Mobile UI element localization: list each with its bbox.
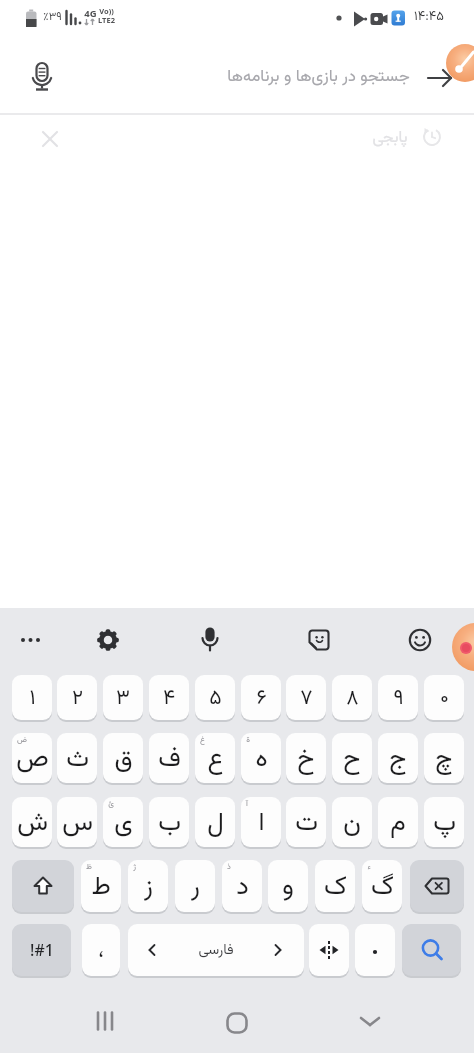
- staticText: ۲: [72, 682, 83, 715]
- staticText: س: [62, 803, 93, 844]
- staticText: ۵: [209, 682, 222, 715]
- button[interactable]: ص: [12, 733, 52, 783]
- staticText: ۴: [163, 682, 175, 715]
- button[interactable]: ت: [286, 797, 326, 847]
- staticText: ۰: [440, 682, 449, 715]
- button[interactable]: [427, 68, 453, 88]
- staticText: ئ: [108, 798, 114, 811]
- staticText: ق: [114, 739, 133, 780]
- button[interactable]: ،: [82, 924, 120, 976]
- button[interactable]: ز: [128, 860, 168, 912]
- button[interactable]: ق: [103, 733, 143, 783]
- button[interactable]: و: [268, 860, 308, 912]
- button[interactable]: [0, 33, 474, 113]
- button[interactable]: ل: [195, 797, 235, 847]
- staticText: ۹: [393, 682, 404, 715]
- staticText: ع: [207, 739, 224, 780]
- button[interactable]: ط: [81, 860, 121, 912]
- button[interactable]: ف: [149, 733, 189, 783]
- button[interactable]: [452, 623, 474, 671]
- button[interactable]: خ: [286, 733, 326, 783]
- button[interactable]: [41, 130, 59, 148]
- staticText: ی: [114, 803, 133, 844]
- button[interactable]: [309, 924, 349, 976]
- button[interactable]: ح: [332, 733, 372, 783]
- button[interactable]: [307, 628, 331, 652]
- button[interactable]: ش: [12, 797, 52, 847]
- staticText: ة: [246, 734, 250, 747]
- button[interactable]: [226, 1012, 248, 1034]
- staticText: ح: [343, 739, 361, 780]
- button[interactable]: [198, 627, 222, 653]
- staticText: غ: [200, 734, 205, 747]
- button[interactable]: ا: [241, 797, 281, 847]
- staticText: ۱۴:۴۵: [414, 7, 444, 27]
- button[interactable]: [90, 1010, 120, 1032]
- button[interactable]: ۷: [286, 675, 326, 720]
- button[interactable]: ۶: [241, 675, 281, 720]
- staticText: ه: [255, 739, 268, 780]
- button[interactable]: ه: [241, 733, 281, 783]
- button[interactable]: ‎!#1: [12, 924, 71, 976]
- button[interactable]: [408, 628, 432, 652]
- button[interactable]: ب: [149, 797, 189, 847]
- staticText: ۱: [29, 682, 36, 715]
- button[interactable]: ع: [195, 733, 235, 783]
- button[interactable]: ن: [332, 797, 372, 847]
- staticText: ۳: [116, 682, 130, 715]
- button[interactable]: ر: [175, 860, 215, 912]
- button[interactable]: [410, 860, 464, 912]
- staticText: ر: [191, 867, 200, 908]
- button[interactable]: ۲: [57, 675, 97, 720]
- button[interactable]: [358, 1012, 382, 1030]
- staticText: ج: [389, 739, 407, 780]
- button[interactable]: م: [378, 797, 418, 847]
- staticText: ک: [324, 867, 347, 908]
- button[interactable]: [446, 44, 474, 82]
- button[interactable]: ۳: [103, 675, 143, 720]
- button[interactable]: فارسی: [128, 924, 304, 976]
- staticText: ‎!#1: [30, 939, 54, 961]
- button[interactable]: ۴: [149, 675, 189, 720]
- button[interactable]: [12, 860, 74, 912]
- button[interactable]: ۰: [424, 675, 464, 720]
- staticText: LTE2: [98, 15, 115, 25]
- button[interactable]: ک: [315, 860, 355, 912]
- button[interactable]: [355, 924, 395, 976]
- staticText: ف: [158, 739, 181, 780]
- staticText: ز: [144, 867, 153, 908]
- staticText: ت: [295, 803, 318, 844]
- button[interactable]: ۱: [12, 675, 52, 720]
- staticText: ن: [343, 803, 361, 844]
- staticText: ء: [367, 861, 371, 874]
- staticText: ،: [98, 935, 104, 968]
- staticText: 4G: [84, 7, 97, 20]
- button[interactable]: [402, 924, 461, 976]
- button[interactable]: س: [57, 797, 97, 847]
- button[interactable]: [422, 127, 442, 147]
- button[interactable]: ث: [57, 733, 97, 783]
- button[interactable]: ی: [103, 797, 143, 847]
- button[interactable]: ۹: [378, 675, 418, 720]
- button[interactable]: [19, 633, 49, 647]
- button[interactable]: [96, 628, 120, 652]
- button[interactable]: پ: [424, 797, 464, 847]
- button[interactable]: ج: [378, 733, 418, 783]
- button[interactable]: چ: [424, 733, 464, 783]
- button[interactable]: گ: [362, 860, 402, 912]
- staticText: ۷: [300, 682, 313, 715]
- staticText: فارسی: [198, 939, 234, 962]
- staticText: ٪۳۹: [43, 8, 62, 26]
- button[interactable]: ۸: [332, 675, 372, 720]
- staticText: Vo)): [99, 6, 114, 16]
- staticText: ۸: [346, 682, 359, 715]
- staticText: ظ: [86, 861, 92, 874]
- button[interactable]: [28, 62, 56, 92]
- staticText: آ: [246, 798, 248, 811]
- staticText: پابجی: [372, 126, 408, 151]
- button[interactable]: د: [222, 860, 262, 912]
- staticText: گ: [371, 867, 394, 908]
- staticText: ث: [66, 739, 89, 780]
- button[interactable]: ۵: [195, 675, 235, 720]
